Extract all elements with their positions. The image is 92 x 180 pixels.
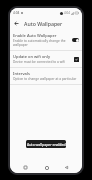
button[interactable]: Intervals xyxy=(10,68,82,84)
staticText: 4:04 xyxy=(13,11,20,15)
button[interactable]: Auto wallpaper enabled xyxy=(26,140,66,148)
staticText: Update on wifi only xyxy=(13,54,51,59)
button[interactable]: Enable Auto Wallpaper xyxy=(10,30,82,50)
staticText: Option to change wallpaper at a particul… xyxy=(13,77,77,81)
button[interactable]: Update on wifi only xyxy=(10,51,82,67)
staticText: 4:04 xyxy=(64,11,70,15)
staticText: Enable to automatically change the wallp… xyxy=(13,39,70,47)
button[interactable]: Back xyxy=(12,19,21,28)
button[interactable]: Recent apps xyxy=(21,163,30,172)
staticText: Intervals xyxy=(13,71,30,76)
button[interactable]: Enable Auto Wallpaper toggle xyxy=(72,38,79,42)
button[interactable]: Home xyxy=(42,163,51,172)
button[interactable]: Back xyxy=(62,163,71,172)
button[interactable]: Update on wifi only checkbox xyxy=(74,57,79,62)
staticText: Auto wallpaper enabled xyxy=(27,142,66,147)
staticText: Enable Auto Wallpaper xyxy=(13,33,57,38)
staticText: Device must be connected to a wifi netwo… xyxy=(13,60,72,64)
staticText: Auto Wallpaper Settings xyxy=(24,20,82,27)
